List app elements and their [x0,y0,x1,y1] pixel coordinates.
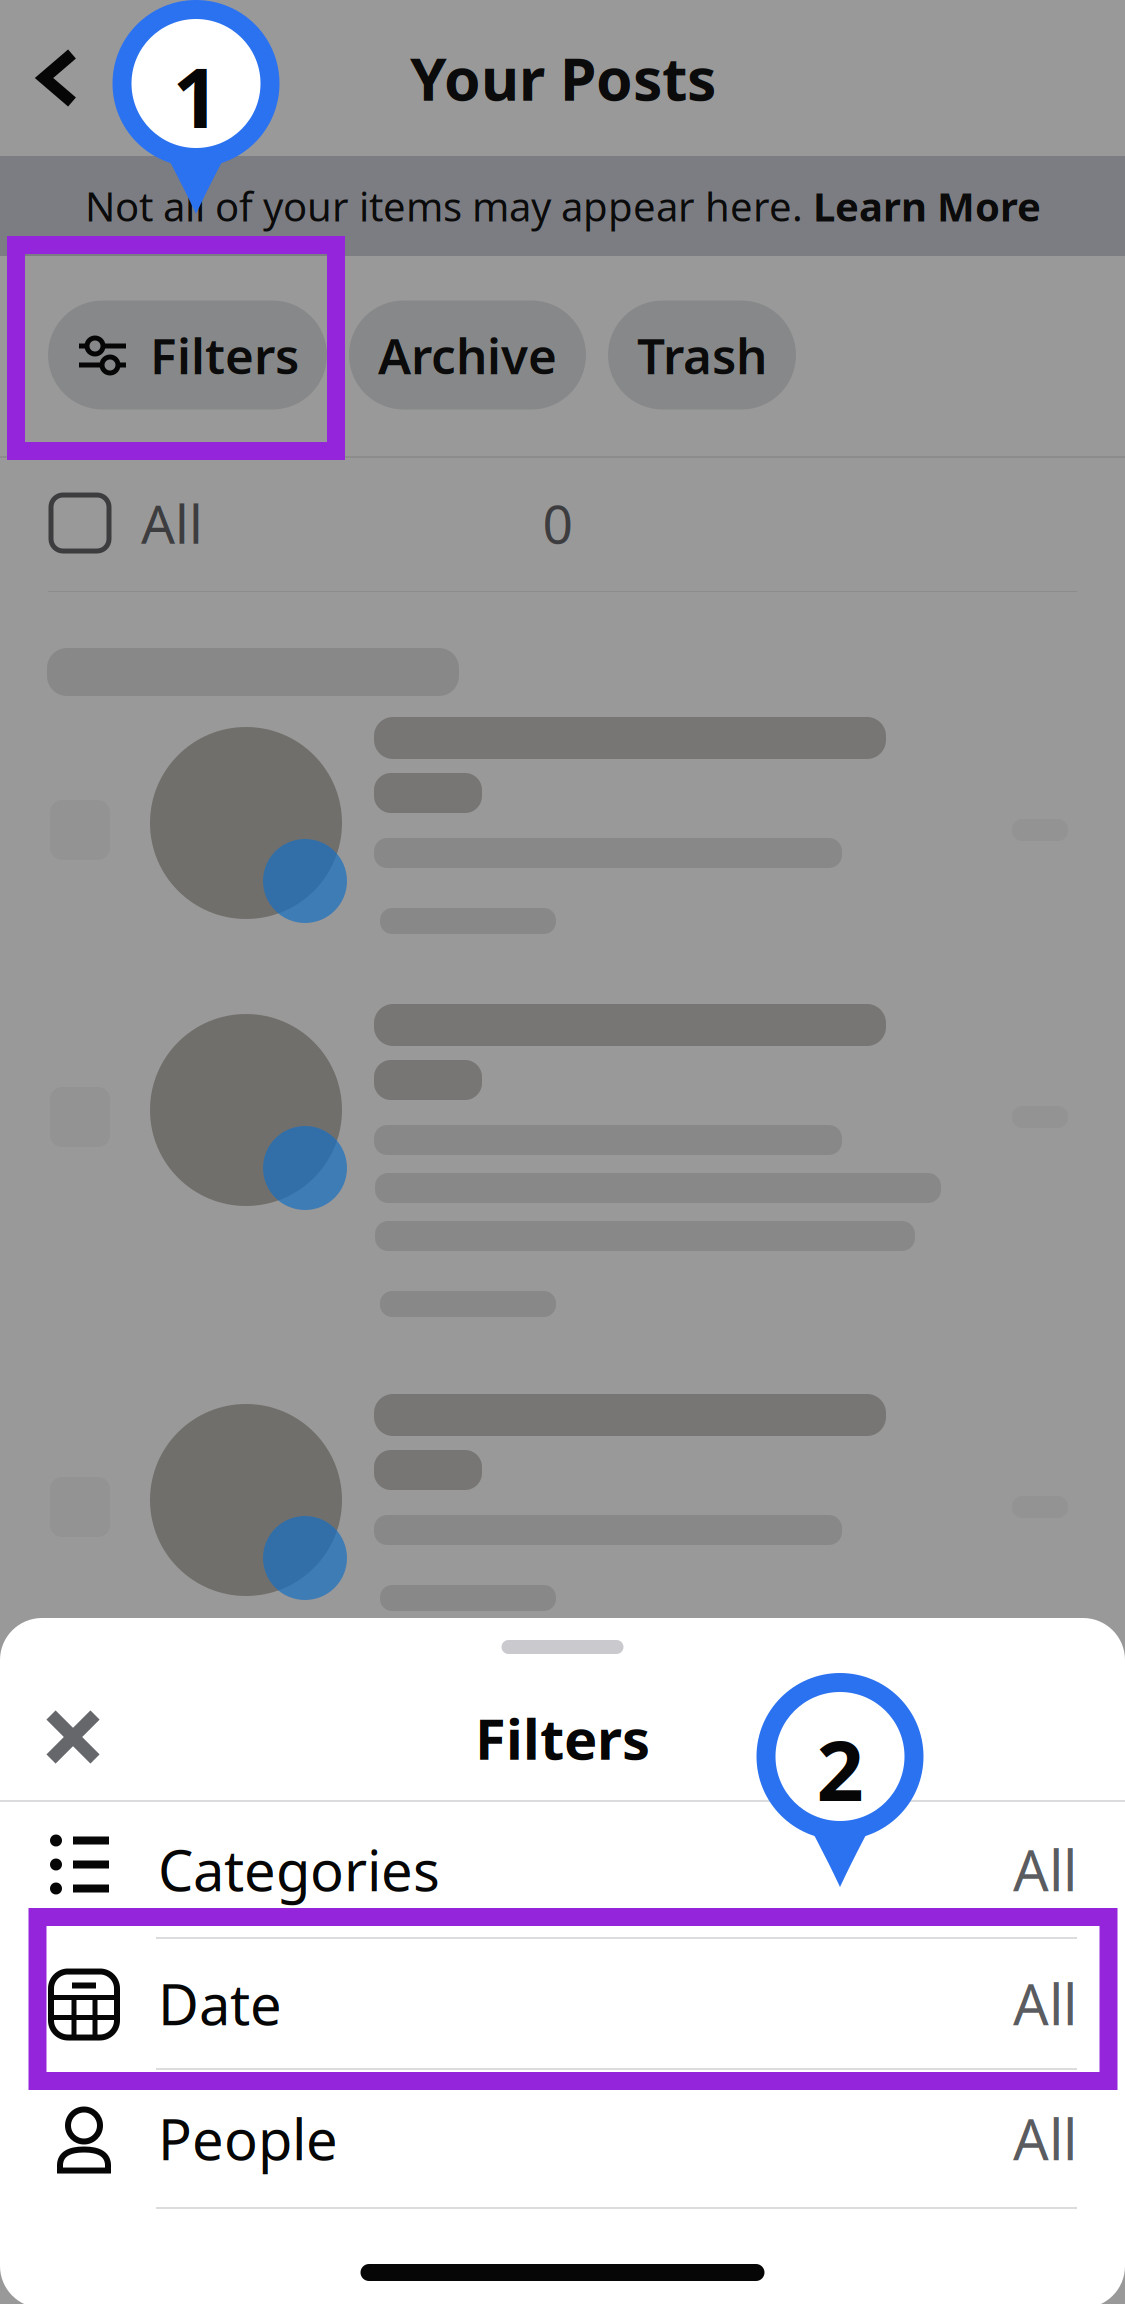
staticText: Date [158,1966,282,2041]
staticText: 1 [172,41,219,151]
button[interactable]: Filters [48,300,327,409]
staticText: All [1013,1966,1077,2041]
button[interactable]: Trash [608,300,796,409]
button[interactable]: Archive [349,300,586,409]
button[interactable]: Learn More [813,179,1041,232]
staticText: Filters [475,1701,650,1775]
staticText: 2 [816,1714,863,1824]
staticText: All [1013,1832,1077,1907]
staticText: Categories [158,1832,440,1907]
staticText: Archive [378,322,557,388]
staticText: All [141,488,203,558]
button[interactable]: Close [18,1683,128,1793]
button[interactable]: Back [0,20,116,136]
staticText: 0 [542,488,573,558]
staticText: Filters [150,322,299,388]
button[interactable]: People [0,2070,1125,2209]
staticText: Trash [637,322,767,388]
staticText: People [158,2101,338,2176]
staticText: Learn More [813,179,1041,232]
button[interactable]: Select all [37,481,123,565]
staticText: Your Posts [410,39,716,117]
staticText: Not all of your items may appear here. [85,179,813,232]
button[interactable]: Categories [0,1802,1125,1939]
staticText: All [1013,2101,1077,2176]
button[interactable]: Date [0,1939,1125,2070]
